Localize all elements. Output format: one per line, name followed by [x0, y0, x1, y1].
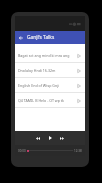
button[interactable]: Fast forward	[56, 132, 68, 144]
other: Play	[74, 48, 84, 63]
button[interactable]: Bagat sct ang mind ki mra ang	[15, 48, 85, 63]
staticText: Dnolaloy Hndi 16-32m	[18, 68, 74, 73]
button[interactable]: Rewind	[32, 132, 44, 144]
staticText: 00:00	[18, 149, 26, 153]
button[interactable]: English End of Wtsp Gnji	[15, 78, 85, 93]
button[interactable]: Q4 TAMIL B Helo - OT wp tk	[15, 93, 85, 108]
staticText: 12:38	[74, 149, 82, 153]
staticText: Q4 TAMIL B Helo - OT wp tk	[18, 98, 74, 103]
staticText: Bagat sct ang mind ki mra ang	[18, 53, 74, 58]
button[interactable]: Dnolaloy Hndi 16-32m	[15, 63, 85, 78]
staticText: Ganji's Talks	[27, 34, 55, 41]
staticText: English End of Wtsp Gnji	[18, 83, 74, 88]
other: Play	[74, 63, 84, 78]
other: Play	[74, 93, 84, 108]
button[interactable]: Seek bar	[27, 145, 73, 156]
button[interactable]: Play	[44, 132, 56, 144]
button[interactable]: Navigate up	[15, 31, 27, 44]
other: Play	[74, 78, 84, 93]
